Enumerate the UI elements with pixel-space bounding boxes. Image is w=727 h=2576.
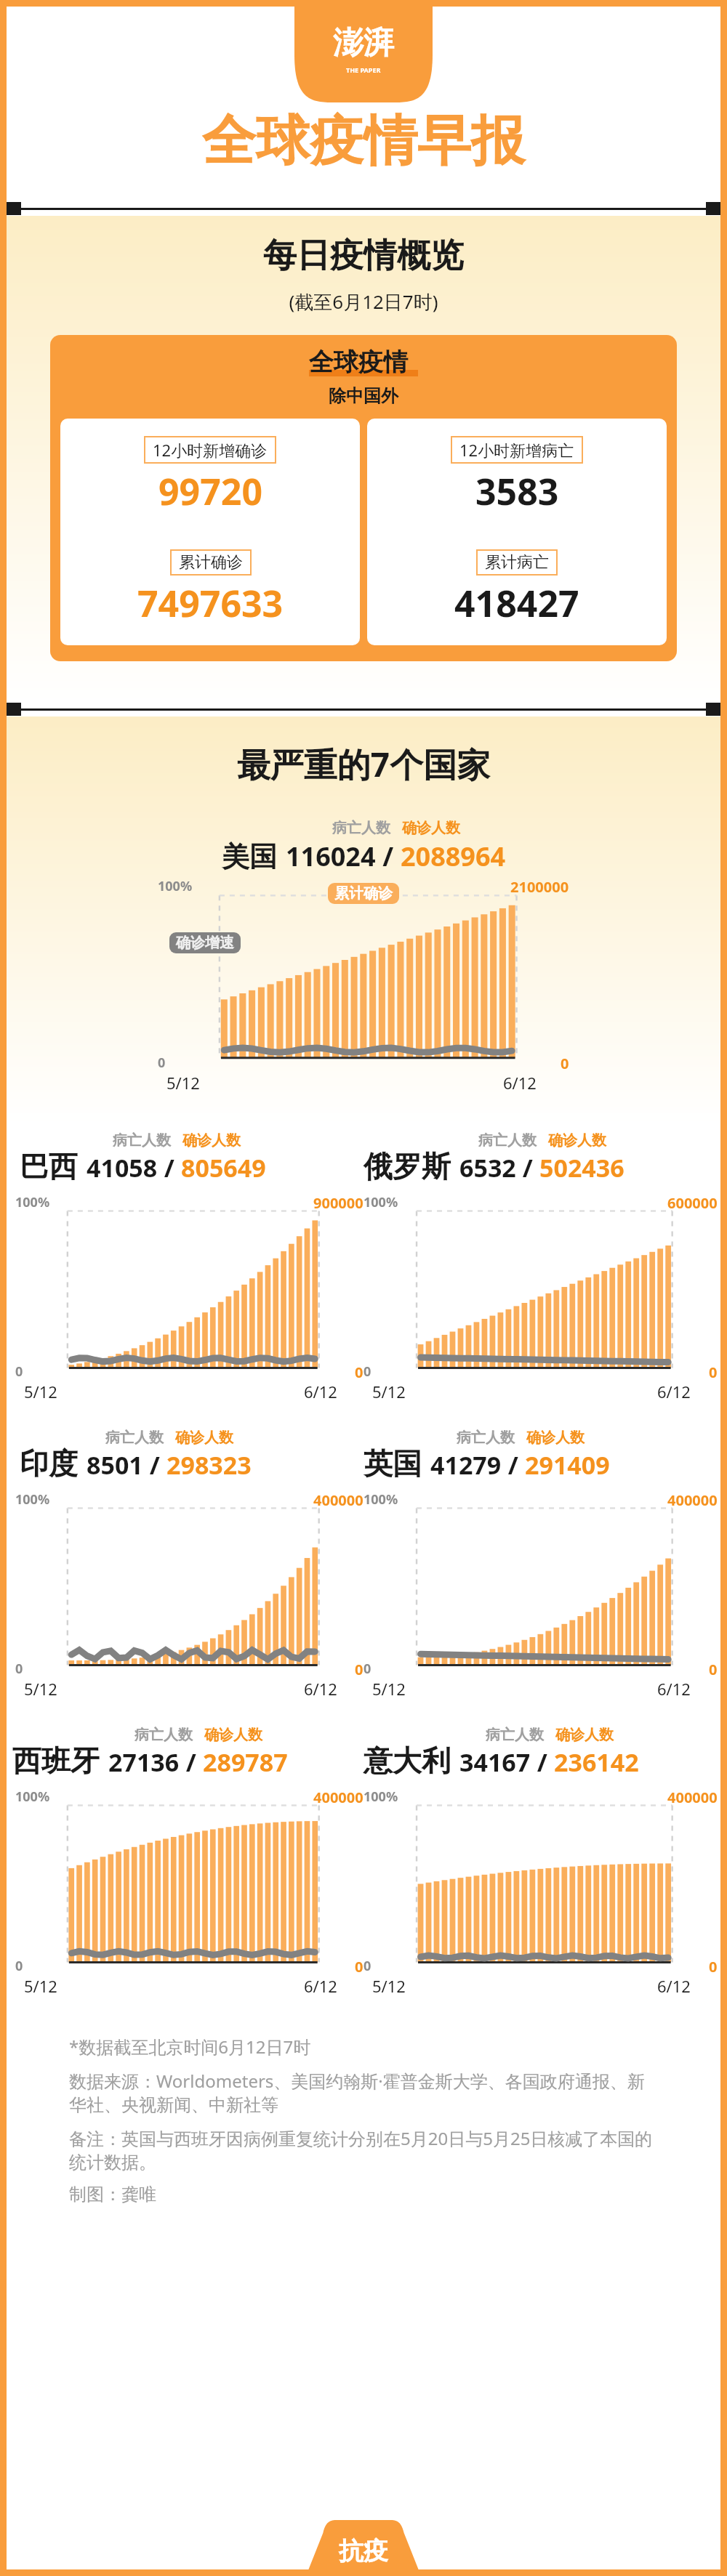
button[interactable]: The Paper logo [294, 7, 433, 102]
staticText: / [158, 1151, 181, 1184]
staticText: 5/12 [166, 1072, 200, 1094]
staticText: 0 [363, 1362, 371, 1381]
staticText: 全球疫情早报 [202, 108, 525, 175]
staticText: 确诊人数 [555, 1726, 614, 1744]
staticText: 6/12 [657, 1381, 691, 1402]
staticText: 0 [709, 1660, 718, 1679]
button[interactable]: 抗疫 [287, 2520, 440, 2569]
staticText: 100% [15, 1193, 50, 1211]
staticText: 291409 [525, 1448, 610, 1482]
staticText: 100% [363, 1490, 398, 1509]
staticText: / [502, 1448, 525, 1482]
staticText: 0 [561, 1054, 569, 1073]
staticText: 6532 [459, 1151, 516, 1184]
staticText: 西班牙 [12, 1743, 100, 1779]
staticText: 0 [15, 1660, 23, 1678]
staticText: 502436 [539, 1151, 624, 1184]
staticText: 累计确诊 [179, 552, 243, 573]
staticText: 100% [158, 877, 193, 895]
staticText: 累计确诊 [334, 884, 393, 903]
staticText: 400000 [313, 1788, 363, 1807]
staticText: 6/12 [304, 1678, 337, 1700]
staticText: *数据截至北京时间6月12日7时 [69, 2035, 311, 2059]
staticText: 0 [158, 1054, 166, 1072]
staticText: 100% [15, 1788, 50, 1806]
staticText: 除中国外 [329, 385, 398, 407]
staticText: 0 [363, 1660, 371, 1678]
staticText: THE PAPER [346, 65, 381, 74]
staticText: 12小时新增病亡 [459, 439, 574, 461]
staticText: 5/12 [372, 1381, 406, 1402]
staticText: 美国 [222, 839, 277, 874]
button[interactable]: 美国 [222, 819, 506, 874]
staticText: 病亡人数 [113, 1131, 171, 1150]
staticText: 5/12 [24, 1381, 57, 1402]
staticText: 0 [355, 1362, 363, 1382]
staticText: 6/12 [657, 1975, 691, 1997]
staticText: 最严重的7个国家 [7, 741, 720, 787]
staticText: 确诊增速 [176, 934, 234, 952]
staticText: 100% [363, 1788, 398, 1806]
staticText: / [143, 1448, 166, 1482]
staticText: / [516, 1151, 539, 1184]
staticText: 100% [15, 1490, 50, 1509]
staticText: 病亡人数 [134, 1726, 193, 1744]
staticText: 34167 [459, 1745, 531, 1779]
staticText: 巴西 [20, 1148, 78, 1184]
staticText: 病亡人数 [478, 1131, 537, 1150]
staticText: 备注：英国与西班牙因病例重复统计分别在5月20日与5月25日核减了本国的统计数据… [69, 2126, 658, 2173]
staticText: 99720 [158, 467, 262, 516]
staticText: / [376, 839, 401, 874]
staticText: 805649 [181, 1151, 266, 1184]
staticText: 12小时新增确诊 [153, 439, 268, 461]
staticText: 病亡人数 [105, 1429, 164, 1447]
staticText: 600000 [667, 1193, 718, 1213]
staticText: / [180, 1745, 203, 1779]
staticText: 印度 [20, 1445, 78, 1482]
staticText: 41058 [87, 1151, 158, 1184]
staticText: 7497633 [137, 578, 284, 628]
button[interactable]: 意大利 [363, 1726, 720, 1779]
staticText: 病亡人数 [332, 819, 390, 837]
staticText: 确诊人数 [548, 1131, 606, 1150]
staticText: 确诊人数 [402, 819, 460, 837]
staticText: 5/12 [24, 1678, 57, 1700]
staticText: 0 [15, 1957, 23, 1975]
staticText: 澎湃 [333, 24, 394, 62]
staticText: 确诊人数 [182, 1131, 241, 1150]
button[interactable]: 西班牙 [12, 1726, 363, 1779]
button[interactable]: 俄罗斯 [363, 1131, 720, 1184]
staticText: 0 [709, 1362, 718, 1382]
button[interactable]: 英国 [363, 1429, 720, 1482]
staticText: 27136 [108, 1745, 180, 1779]
staticText: 俄罗斯 [363, 1148, 451, 1184]
staticText: 确诊人数 [526, 1429, 585, 1447]
staticText: 6/12 [304, 1381, 337, 1402]
staticText: 289787 [203, 1745, 288, 1779]
staticText: 意大利 [363, 1743, 451, 1779]
staticText: 病亡人数 [486, 1726, 544, 1744]
staticText: 病亡人数 [457, 1429, 515, 1447]
staticText: 400000 [667, 1788, 718, 1807]
button[interactable]: 印度 [20, 1429, 363, 1482]
staticText: 41279 [430, 1448, 502, 1482]
button[interactable]: 巴西 [20, 1131, 363, 1184]
staticText: 5/12 [24, 1975, 57, 1997]
staticText: 制图：龚唯 [69, 2184, 156, 2205]
staticText: 0 [355, 1660, 363, 1679]
staticText: 0 [355, 1957, 363, 1977]
staticText: 400000 [313, 1490, 363, 1510]
staticText: 确诊人数 [175, 1429, 233, 1447]
staticText: 累计病亡 [485, 552, 549, 573]
staticText: 英国 [363, 1445, 422, 1482]
staticText: 5/12 [372, 1975, 406, 1997]
staticText: 全球疫情 [309, 347, 408, 378]
staticText: 900000 [313, 1193, 363, 1213]
staticText: 确诊人数 [204, 1726, 262, 1744]
staticText: 6/12 [503, 1072, 537, 1094]
staticText: / [531, 1745, 554, 1779]
staticText: 每日疫情概览 [7, 235, 720, 277]
button[interactable]: 全球疫情 [50, 335, 677, 661]
staticText: 0 [15, 1362, 23, 1381]
staticText: (截至6月12日7时) [7, 288, 720, 315]
